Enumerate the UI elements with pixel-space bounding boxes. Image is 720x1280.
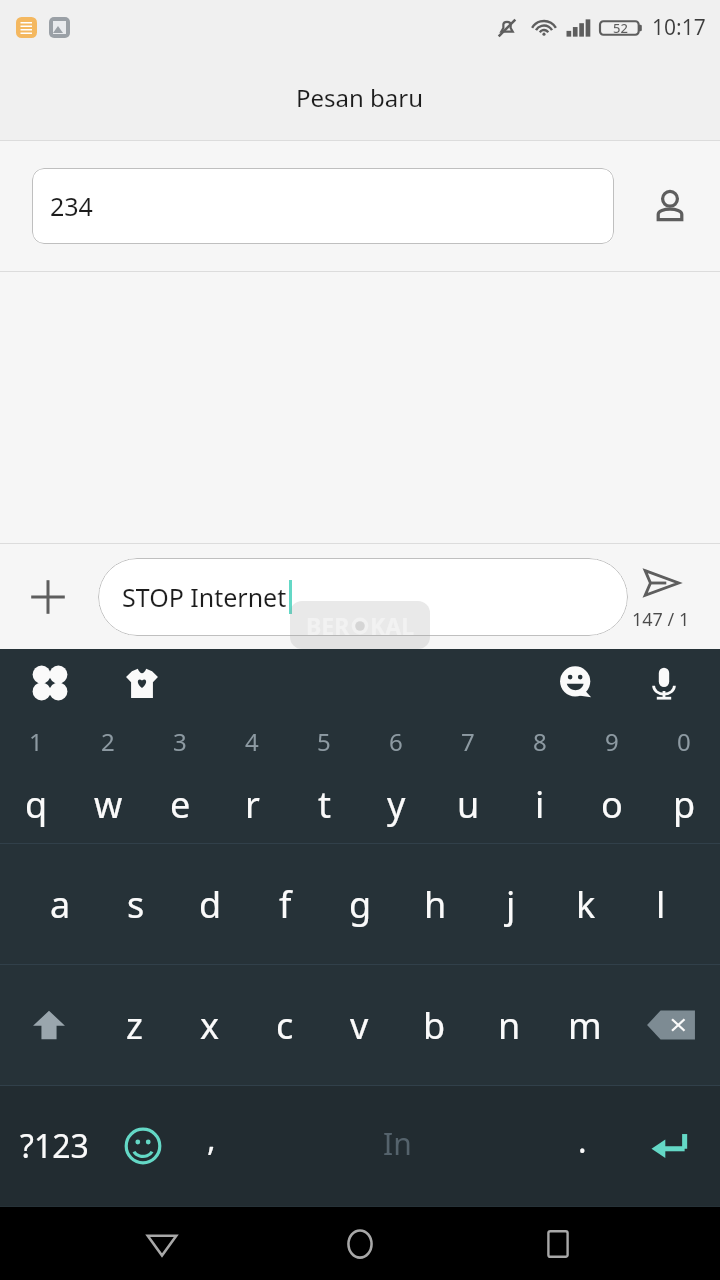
staticText: Pesan baru	[296, 81, 424, 114]
button[interactable]: n	[472, 965, 547, 1085]
button[interactable]: t	[288, 765, 360, 843]
staticText: q	[25, 780, 48, 829]
staticText: 9	[605, 725, 619, 758]
staticText: y	[387, 780, 406, 829]
staticText: In	[383, 1123, 412, 1164]
button[interactable]: 9	[576, 717, 648, 765]
staticText: f	[279, 880, 292, 929]
button[interactable]: y	[360, 765, 432, 843]
button[interactable]: STOP Internet	[98, 558, 628, 636]
staticText: s	[127, 880, 145, 929]
button[interactable]: 1	[0, 717, 72, 765]
staticText: j	[506, 880, 516, 929]
staticText: d	[199, 880, 222, 929]
button[interactable]: Enter	[617, 1086, 720, 1206]
staticText: 1	[29, 725, 43, 758]
staticText: v	[350, 1001, 369, 1050]
button[interactable]: 7	[432, 717, 504, 765]
button[interactable]: Emoji keyboard	[109, 1086, 177, 1206]
button[interactable]: 4	[216, 717, 288, 765]
staticText: n	[498, 1001, 521, 1050]
staticText: w	[94, 780, 123, 829]
button[interactable]: m	[547, 965, 622, 1085]
button[interactable]: ,	[177, 1086, 246, 1206]
staticText: g	[349, 880, 372, 929]
button[interactable]: 8	[504, 717, 576, 765]
button[interactable]: Send message	[616, 561, 706, 632]
staticText: BER	[306, 610, 350, 641]
staticText: 147 / 1	[632, 607, 690, 632]
button[interactable]: Voice input	[638, 657, 690, 709]
button[interactable]: Shift	[0, 965, 97, 1085]
staticText: KAL	[370, 610, 415, 641]
staticText: z	[126, 1001, 143, 1050]
staticText: STOP Internet	[122, 580, 287, 614]
staticText: 2	[101, 725, 115, 758]
button[interactable]: Add attachment	[16, 565, 80, 629]
button[interactable]: ?123	[0, 1086, 109, 1206]
staticText: 5	[317, 725, 331, 758]
staticText: u	[457, 780, 480, 829]
button[interactable]: l	[623, 844, 698, 964]
button[interactable]: v	[322, 965, 397, 1085]
button[interactable]: Home	[324, 1208, 396, 1280]
staticText: ?123	[20, 1124, 89, 1168]
button[interactable]: d	[173, 844, 248, 964]
button[interactable]: g	[323, 844, 398, 964]
staticText: a	[50, 880, 71, 929]
button[interactable]: Stickers	[116, 657, 168, 709]
button[interactable]: 0	[648, 717, 720, 765]
button[interactable]: .	[548, 1086, 617, 1206]
button[interactable]: Emoji	[550, 657, 602, 709]
button[interactable]: Pick contact	[642, 178, 698, 234]
button[interactable]: 234	[32, 168, 614, 244]
staticText: 10:17	[652, 13, 706, 42]
button[interactable]: q	[0, 765, 72, 843]
button[interactable]: j	[473, 844, 548, 964]
button[interactable]: b	[397, 965, 472, 1085]
button[interactable]: In	[246, 1086, 548, 1206]
button[interactable]: z	[97, 965, 172, 1085]
staticText: i	[535, 780, 545, 829]
button[interactable]: x	[172, 965, 247, 1085]
staticText: 234	[50, 189, 93, 223]
button[interactable]: Recent apps	[522, 1208, 594, 1280]
staticText: l	[656, 880, 666, 929]
button[interactable]: c	[247, 965, 322, 1085]
button[interactable]: i	[504, 765, 576, 843]
staticText: 0	[677, 725, 691, 758]
button[interactable]: Themes	[24, 657, 76, 709]
staticText: k	[576, 880, 596, 929]
button[interactable]: Back	[126, 1208, 198, 1280]
staticText: x	[200, 1001, 220, 1050]
staticText: e	[170, 780, 191, 829]
button[interactable]: a	[22, 844, 98, 964]
staticText: o	[601, 780, 623, 829]
staticText: 3	[173, 725, 187, 758]
button[interactable]: h	[398, 844, 473, 964]
staticText: m	[568, 1001, 602, 1050]
staticText: h	[424, 880, 447, 929]
button[interactable]: e	[144, 765, 216, 843]
button[interactable]: 2	[72, 717, 144, 765]
button[interactable]: k	[548, 844, 623, 964]
staticText: 8	[533, 725, 547, 758]
staticText: .	[578, 1119, 587, 1163]
button[interactable]: s	[98, 844, 173, 964]
button[interactable]: r	[216, 765, 288, 843]
button[interactable]: Backspace	[622, 965, 720, 1085]
button[interactable]: w	[72, 765, 144, 843]
staticText: r	[245, 780, 260, 829]
button[interactable]: u	[432, 765, 504, 843]
staticText: t	[318, 780, 331, 829]
button[interactable]: 5	[288, 717, 360, 765]
button[interactable]: 6	[360, 717, 432, 765]
button[interactable]: 3	[144, 717, 216, 765]
staticText: 7	[461, 725, 475, 758]
staticText: ,	[207, 1117, 216, 1161]
button[interactable]: p	[648, 765, 720, 843]
button[interactable]: o	[576, 765, 648, 843]
staticText: c	[276, 1001, 294, 1050]
button[interactable]: f	[248, 844, 323, 964]
staticText: 4	[245, 725, 259, 758]
